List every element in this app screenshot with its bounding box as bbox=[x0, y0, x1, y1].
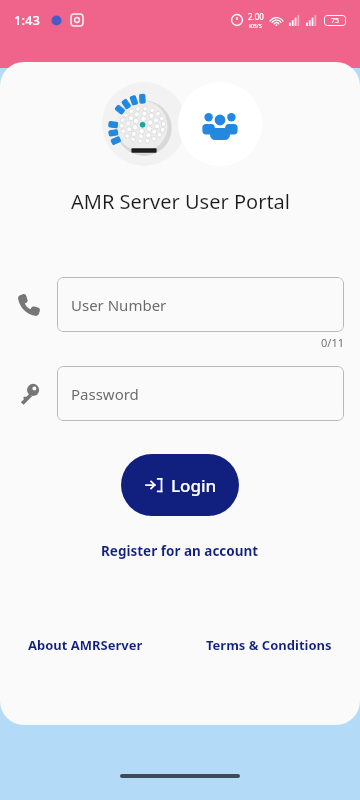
staticText: Register for an account bbox=[101, 542, 259, 560]
staticText: AMR Server User Portal bbox=[71, 188, 290, 215]
staticText: 0/11 bbox=[321, 335, 344, 350]
staticText: Terms & Conditions bbox=[206, 636, 332, 654]
button[interactable]: User Number bbox=[57, 277, 344, 332]
staticText: Password bbox=[71, 384, 139, 404]
staticText: Login bbox=[171, 474, 217, 497]
staticText: 75 bbox=[331, 16, 340, 26]
staticText: User Number bbox=[71, 295, 167, 315]
button[interactable]: About AMRServer bbox=[28, 632, 143, 658]
staticText: 2.00 bbox=[248, 11, 264, 22]
staticText: 1:43 bbox=[14, 11, 40, 29]
staticText: About AMRServer bbox=[28, 636, 143, 654]
button[interactable]: Terms & Conditions bbox=[206, 632, 332, 658]
button[interactable]: Login bbox=[121, 454, 239, 516]
button[interactable]: Password bbox=[57, 366, 344, 421]
button[interactable]: Register for an account bbox=[93, 538, 267, 564]
staticText: KB/S bbox=[249, 22, 263, 30]
